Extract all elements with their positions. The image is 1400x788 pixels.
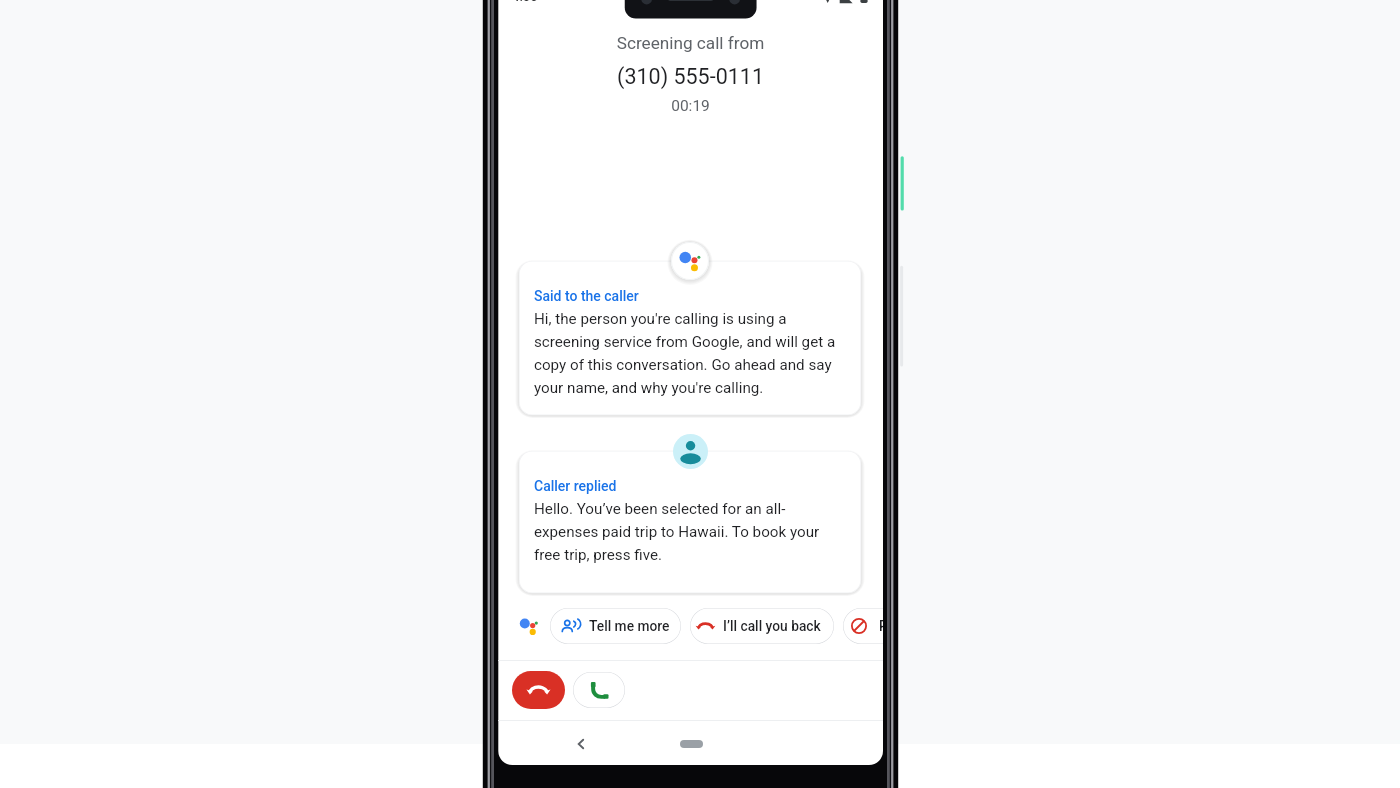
staticText: Report spam xyxy=(879,618,883,634)
staticText: Hi, the person you're calling is using a… xyxy=(534,310,846,397)
button[interactable]: Caller replied xyxy=(519,451,861,593)
button[interactable]: Tell me more xyxy=(550,608,681,644)
staticText: Tell me more xyxy=(589,618,670,634)
button[interactable]: Said to the caller xyxy=(519,261,861,415)
staticText: Hello. You’ve been selected for an all-e… xyxy=(534,500,846,564)
button[interactable]: Answer call xyxy=(573,672,625,708)
staticText: 4:00 xyxy=(512,0,538,4)
staticText: Screening call from xyxy=(498,33,883,53)
button[interactable]: End call xyxy=(512,671,565,709)
button[interactable]: Home xyxy=(680,740,703,748)
button[interactable]: I’ll call you back xyxy=(690,608,834,644)
staticText: I’ll call you back xyxy=(723,618,821,634)
staticText: Caller replied xyxy=(534,478,617,494)
button[interactable]: Back xyxy=(569,732,593,756)
staticText: Said to the caller xyxy=(534,288,639,304)
button[interactable]: Report spam xyxy=(843,608,883,644)
staticText: 00:19 xyxy=(498,97,883,115)
staticText: (310) 555-0111 xyxy=(498,64,883,89)
